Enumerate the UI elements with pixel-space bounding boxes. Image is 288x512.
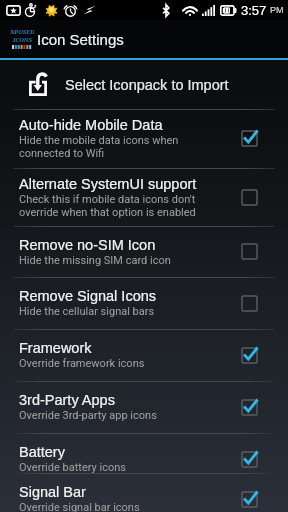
staticText: 3rd-Party Apps: [19, 392, 115, 408]
staticText: override when that option is enabled: [19, 206, 196, 219]
other: Checked: [242, 131, 257, 146]
staticText: Remove no-SIM Icon: [19, 237, 156, 253]
button[interactable]: Framework: [0, 329, 288, 381]
staticText: Battery: [19, 444, 65, 460]
other: Checked: [242, 348, 257, 363]
other: Unchecked: [242, 190, 257, 205]
staticText: Hide the mobile data icons when: [19, 134, 179, 147]
other: Checked: [242, 492, 257, 507]
button[interactable]: Battery: [0, 433, 288, 485]
staticText: Hide the cellular signal bars: [19, 305, 155, 318]
other: Unchecked: [242, 244, 257, 259]
staticText: PM: [270, 5, 284, 15]
other: Select Iconpack to Import: [28, 73, 48, 96]
button[interactable]: Alternate SystemUI support: [0, 168, 288, 226]
staticText: connected to Wifi: [19, 147, 105, 160]
button[interactable]: Select Iconpack to Import: [0, 60, 288, 109]
staticText: Remove Signal Icons: [19, 288, 157, 304]
staticText: Signal Bar: [19, 484, 86, 500]
staticText: XPOSED: [10, 28, 34, 36]
staticText: ICONS: [13, 36, 32, 44]
button[interactable]: 3rd-Party Apps: [0, 381, 288, 433]
staticText: Override 3rd-party app icons: [19, 409, 157, 422]
staticText: Framework: [19, 340, 92, 356]
other: Checked: [242, 400, 257, 415]
staticText: Override battery icons: [19, 461, 126, 474]
staticText: Auto-hide Mobile Data: [19, 117, 163, 133]
staticText: Alternate SystemUI support: [19, 176, 197, 192]
staticText: Icon Settings: [37, 31, 124, 48]
staticText: Override framework icons: [19, 357, 145, 370]
staticText: Check this if mobile data icons don't: [19, 193, 196, 206]
other: Unchecked: [242, 296, 257, 311]
button[interactable]: Auto-hide Mobile Data: [0, 109, 288, 168]
other: Checked: [242, 452, 257, 467]
button[interactable]: Signal Bar: [0, 473, 288, 512]
button[interactable]: Remove no-SIM Icon: [0, 226, 288, 277]
staticText: Hide the missing SIM card icon: [19, 254, 171, 267]
staticText: Override signal bar icons: [19, 501, 140, 512]
staticText: Select Iconpack to Import: [65, 77, 229, 93]
staticText: 3:57: [241, 3, 267, 18]
button[interactable]: Remove Signal Icons: [0, 277, 288, 329]
